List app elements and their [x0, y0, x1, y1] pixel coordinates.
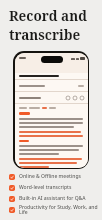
button[interactable] — [15, 80, 88, 91]
staticText: Built-in AI assistant for Q&A — [19, 195, 86, 202]
button[interactable]: Transcript action — [13, 51, 89, 169]
button[interactable]: Online & Offline meetings — [9, 171, 98, 182]
button[interactable]: Built-in AI assistant for Q&A — [9, 193, 98, 204]
staticText: Productivity for Study, Work, and Life — [19, 204, 98, 215]
button[interactable]: Transcript action — [73, 96, 77, 100]
button[interactable]: Transcript action — [15, 92, 88, 103]
staticText: Word-level transcripts — [19, 184, 72, 191]
button[interactable]: Transcript action — [66, 96, 70, 100]
button[interactable]: Transcript action — [80, 96, 84, 100]
button[interactable]: Productivity for Study, Work, and Life — [9, 204, 98, 215]
button[interactable]: Word-level transcripts — [9, 182, 98, 193]
staticText: Online & Offline meetings — [19, 173, 81, 180]
staticText: Record and — [9, 7, 87, 25]
staticText: transcribe — [9, 26, 81, 44]
